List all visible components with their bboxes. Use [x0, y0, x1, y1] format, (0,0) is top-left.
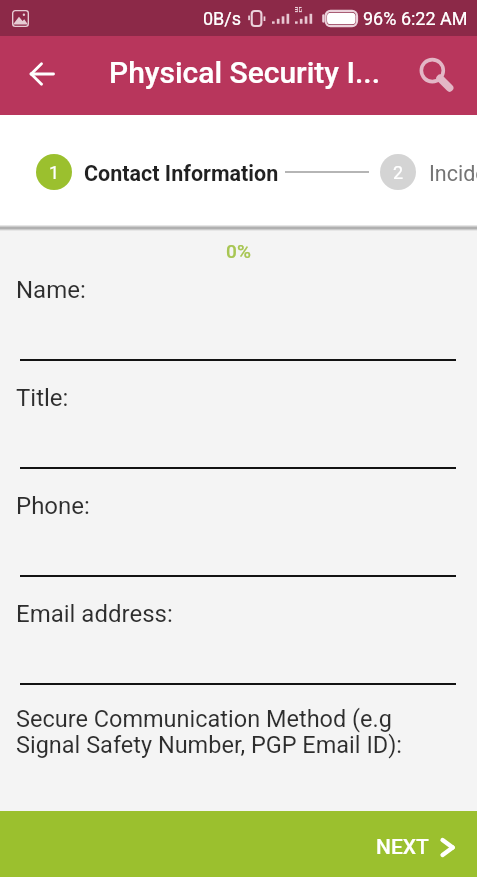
button[interactable]: 2 [380, 154, 416, 190]
staticText: NEXT [376, 835, 429, 860]
staticText: 96% 6:22 AM [363, 8, 468, 29]
staticText: Email address: [16, 600, 173, 628]
staticText: Contact Information [84, 161, 279, 186]
button[interactable]: NEXT [0, 811, 477, 877]
staticText: Incident [429, 161, 477, 186]
staticText: Name: [16, 276, 86, 304]
button[interactable]: Back [18, 50, 66, 98]
staticText: 1 [49, 162, 60, 183]
button[interactable]: 1 [36, 154, 72, 190]
button[interactable]: Search [413, 52, 461, 100]
staticText: 0B/s [203, 8, 242, 29]
staticText: Title: [16, 384, 69, 412]
staticText: 2 [393, 162, 404, 183]
staticText: Physical Security I... [109, 55, 380, 90]
staticText: Phone: [16, 492, 90, 520]
staticText: 0% [0, 240, 477, 262]
staticText: Secure Communication Method (e.g Signal … [16, 705, 403, 758]
